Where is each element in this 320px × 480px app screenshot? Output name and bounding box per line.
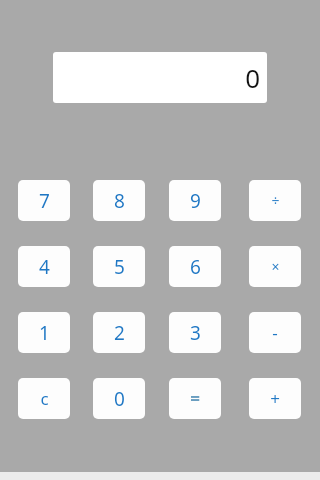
button[interactable]: 2	[93, 312, 145, 353]
staticText: 9	[190, 188, 201, 214]
button[interactable]: 9	[169, 180, 221, 221]
staticText: 1	[39, 320, 50, 346]
button[interactable]: 8	[93, 180, 145, 221]
button[interactable]: c	[18, 378, 70, 419]
button[interactable]: ×	[249, 246, 301, 287]
staticText: +	[270, 387, 280, 410]
staticText: ×	[271, 257, 280, 276]
button[interactable]: 0	[53, 52, 267, 103]
button[interactable]: 1	[18, 312, 70, 353]
staticText: 2	[114, 320, 125, 346]
staticText: =	[190, 387, 200, 410]
staticText: 4	[39, 254, 50, 280]
staticText: 0	[245, 60, 260, 95]
button[interactable]: 6	[169, 246, 221, 287]
button[interactable]: 4	[18, 246, 70, 287]
button[interactable]: 5	[93, 246, 145, 287]
staticText: 0	[114, 386, 125, 412]
staticText: 6	[190, 254, 201, 280]
button[interactable]: ÷	[249, 180, 301, 221]
staticText: c	[40, 387, 49, 410]
button[interactable]: 0	[93, 378, 145, 419]
staticText: 8	[114, 188, 125, 214]
staticText: 3	[190, 320, 201, 346]
button[interactable]: +	[249, 378, 301, 419]
staticText: ÷	[271, 191, 280, 210]
button[interactable]: =	[169, 378, 221, 419]
staticText: -	[272, 321, 278, 344]
button[interactable]: -	[249, 312, 301, 353]
staticText: 5	[114, 254, 125, 280]
button[interactable]: 3	[169, 312, 221, 353]
staticText: 7	[39, 188, 50, 214]
button[interactable]: 7	[18, 180, 70, 221]
